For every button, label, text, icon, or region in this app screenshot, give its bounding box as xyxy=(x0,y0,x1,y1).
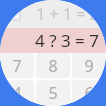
staticText: 7 xyxy=(12,55,22,77)
staticText: 8 xyxy=(48,55,58,77)
button[interactable]: 6 xyxy=(72,80,106,106)
staticText: 6 xyxy=(84,82,94,104)
staticText: 9 xyxy=(84,55,94,77)
button[interactable]: 5 xyxy=(36,80,70,106)
button[interactable]: App icon xyxy=(0,0,106,28)
button[interactable]: 4 ? 3 = 7 xyxy=(0,28,106,53)
button[interactable]: 8 xyxy=(36,53,70,78)
staticText: 5 xyxy=(48,82,58,104)
button[interactable]: App icon xyxy=(2,2,21,21)
button[interactable]: 9 xyxy=(72,53,106,78)
staticText: 4 xyxy=(12,82,22,104)
button[interactable]: 7 xyxy=(0,53,34,78)
staticText: 1 + 1 = 2 xyxy=(36,3,99,25)
staticText: 4 ? 3 = 7 xyxy=(35,29,99,52)
button[interactable]: 4 xyxy=(0,80,34,106)
